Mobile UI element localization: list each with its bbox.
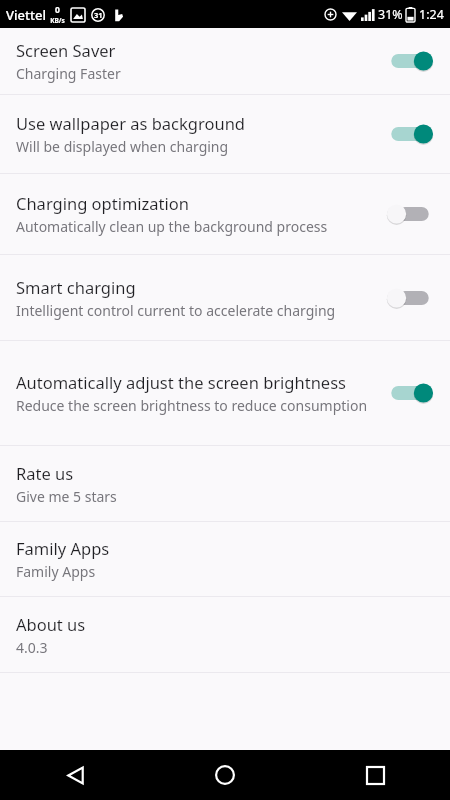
staticText: About us (16, 613, 86, 635)
staticText: Viettel (6, 6, 46, 24)
staticText: 31 (94, 10, 103, 20)
button[interactable]: Toggle off (384, 282, 436, 314)
button[interactable]: Use wallpaper as background (0, 95, 450, 173)
staticText: 4.0.3 (16, 638, 48, 657)
staticText: Rate us (16, 462, 74, 484)
button[interactable]: Smart charging (0, 255, 450, 340)
button[interactable]: Toggle on (384, 118, 436, 150)
button[interactable]: About us (0, 597, 450, 672)
button[interactable]: Toggle on (384, 377, 436, 409)
button[interactable]: Home (150, 750, 300, 800)
staticText: Use wallpaper as background (16, 112, 246, 134)
staticText: Screen Saver (16, 39, 116, 61)
staticText: Will be displayed when charging (16, 137, 229, 156)
button[interactable]: Rate us (0, 446, 450, 521)
button[interactable]: Toggle on (384, 45, 436, 77)
staticText: Family Apps (16, 537, 110, 559)
staticText: Give me 5 stars (16, 487, 117, 506)
staticText: 31% (378, 6, 403, 23)
staticText: Reduce the screen brightness to reduce c… (16, 396, 368, 415)
button[interactable]: Recent apps (300, 750, 450, 800)
staticText: Automatically adjust the screen brightne… (16, 371, 346, 393)
staticText: Charging Faster (16, 64, 121, 83)
staticText: KB/s (50, 16, 65, 25)
button[interactable]: Family Apps (0, 522, 450, 596)
staticText: Family Apps (16, 562, 96, 581)
button[interactable]: Charging optimization (0, 174, 450, 254)
staticText: 1:24 (419, 6, 444, 23)
button[interactable]: Screen Saver (0, 28, 450, 94)
staticText: Intelligent control current to accelerat… (16, 301, 336, 320)
button[interactable]: Back (0, 750, 150, 800)
staticText: Smart charging (16, 276, 136, 298)
staticText: 0 (55, 4, 60, 16)
button[interactable]: Automatically adjust the screen brightne… (0, 341, 450, 445)
staticText: Automatically clean up the background pr… (16, 217, 328, 236)
button[interactable]: Toggle off (384, 198, 436, 230)
staticText: Charging optimization (16, 192, 190, 214)
